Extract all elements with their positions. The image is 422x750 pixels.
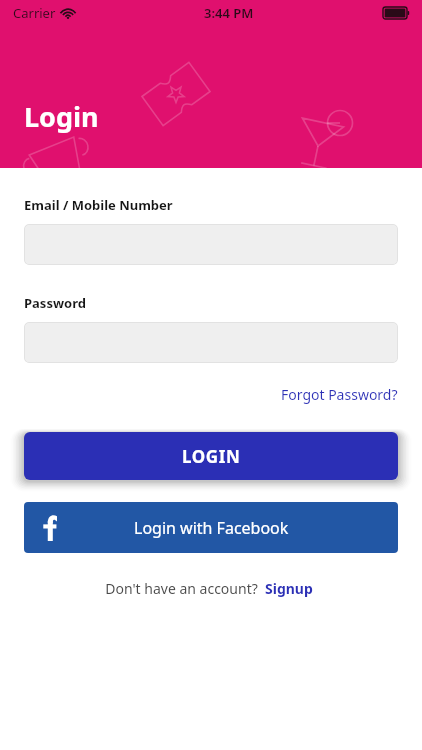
staticText: Login with Facebook <box>134 517 289 539</box>
staticText: Email / Mobile Number <box>24 196 173 214</box>
staticText: 3:44 PM <box>204 4 254 22</box>
button[interactable]: LOGIN <box>24 432 398 480</box>
staticText: LOGIN <box>182 445 241 468</box>
staticText: Don't have an account? <box>105 579 258 598</box>
staticText: Forgot Password? <box>281 385 398 404</box>
button[interactable]: Login with Facebook <box>24 502 398 553</box>
staticText: Login <box>24 98 99 135</box>
staticText: Password <box>24 294 86 312</box>
button[interactable]: Signup <box>258 575 317 602</box>
button[interactable]: Forgot Password? <box>281 381 422 408</box>
staticText: Carrier <box>13 4 56 22</box>
staticText: Signup <box>265 579 313 598</box>
